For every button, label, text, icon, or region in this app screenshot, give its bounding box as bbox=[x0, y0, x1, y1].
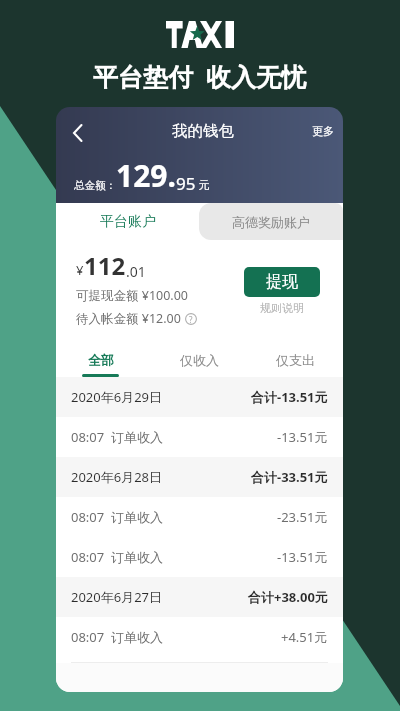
staticText: 待入帐金额 ¥12.00 bbox=[76, 310, 185, 327]
button[interactable]: 规则说明 bbox=[260, 301, 304, 315]
staticText: 仅支出 bbox=[276, 352, 315, 368]
staticText: 2020年6月28日 bbox=[71, 468, 163, 486]
staticText: 合计+38.00元 bbox=[248, 588, 328, 606]
staticText: 合计-13.51元 bbox=[251, 388, 328, 406]
staticText: 元 bbox=[196, 177, 210, 192]
button[interactable]: 仅收入 bbox=[151, 339, 247, 377]
staticText: -23.51元 bbox=[277, 508, 328, 526]
staticText: ¥ bbox=[76, 261, 84, 279]
button[interactable]: Help bbox=[185, 313, 197, 325]
button[interactable]: 高德奖励账户 bbox=[199, 203, 343, 240]
staticText: -13.51元 bbox=[277, 548, 328, 566]
staticText: 112 bbox=[84, 249, 126, 282]
staticText: -13.51元 bbox=[277, 428, 328, 446]
staticText: 规则说明 bbox=[260, 301, 304, 315]
button[interactable]: 平台账户 bbox=[56, 203, 199, 240]
staticText: 高德奖励账户 bbox=[232, 214, 310, 230]
button[interactable]: 仅支出 bbox=[247, 339, 343, 377]
staticText: 全部 bbox=[88, 352, 114, 368]
button[interactable]: 2020年6月27日 bbox=[56, 577, 343, 617]
staticText: 总金额： bbox=[74, 179, 116, 192]
staticText: 08:07 订单收入 bbox=[71, 508, 163, 526]
staticText: 更多 bbox=[312, 124, 334, 138]
staticText: 仅收入 bbox=[180, 352, 219, 368]
button[interactable]: 08:07 订单收入 bbox=[56, 497, 343, 537]
button[interactable]: 08:07 订单收入 bbox=[56, 617, 343, 657]
staticText: 08:07 订单收入 bbox=[71, 548, 163, 566]
button[interactable]: 08:07 订单收入 bbox=[56, 537, 343, 577]
staticText: 2020年6月29日 bbox=[71, 388, 163, 406]
button[interactable]: 2020年6月29日 bbox=[56, 377, 343, 417]
staticText: 08:07 订单收入 bbox=[71, 628, 163, 646]
button[interactable]: 更多 bbox=[312, 124, 334, 138]
staticText: 129. bbox=[116, 155, 176, 196]
staticText: 2020年6月27日 bbox=[71, 588, 163, 606]
button[interactable]: 全部 bbox=[56, 339, 151, 377]
button[interactable]: 2020年6月28日 bbox=[56, 457, 343, 497]
staticText: 我的钱包 bbox=[172, 121, 234, 141]
staticText: 08:07 订单收入 bbox=[71, 428, 163, 446]
staticText: 可提现金额 ¥100.00 bbox=[76, 287, 189, 304]
staticText: 平台账户 bbox=[100, 213, 156, 231]
staticText: +4.51元 bbox=[281, 628, 328, 646]
button[interactable]: 08:07 订单收入 bbox=[56, 417, 343, 457]
staticText: 合计-33.51元 bbox=[251, 468, 328, 486]
staticText: .01 bbox=[126, 262, 146, 281]
staticText: 提现 bbox=[266, 272, 298, 292]
staticText: 95 bbox=[176, 172, 196, 195]
button[interactable]: 提现 bbox=[244, 267, 320, 297]
staticText: 平台垫付 收入无忧 bbox=[93, 59, 307, 93]
staticText: ? bbox=[189, 314, 193, 325]
button[interactable]: Back bbox=[65, 118, 91, 144]
